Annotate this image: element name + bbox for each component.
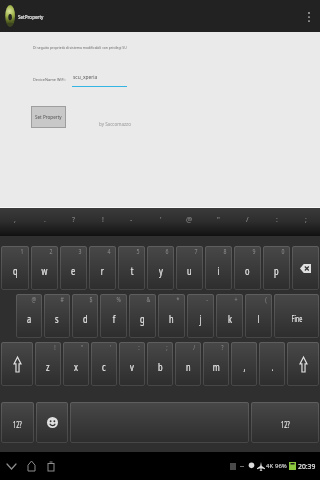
staticText: h bbox=[169, 311, 174, 326]
button[interactable]: ! bbox=[88, 208, 117, 232]
button[interactable]: Hide keyboard bbox=[4, 459, 18, 473]
button[interactable]: h bbox=[158, 294, 185, 338]
button[interactable]: x bbox=[63, 342, 89, 386]
staticText: scu_xperia bbox=[73, 74, 98, 81]
staticText: 6 bbox=[165, 247, 169, 256]
button[interactable] bbox=[1, 342, 33, 386]
button[interactable]: t bbox=[118, 246, 145, 290]
staticText: 0 bbox=[281, 247, 285, 256]
staticText: ( bbox=[265, 295, 267, 304]
staticText: 12? bbox=[13, 419, 22, 430]
button[interactable]: p bbox=[263, 246, 290, 290]
staticText: @ bbox=[32, 295, 36, 304]
staticText: ? bbox=[221, 343, 224, 352]
button[interactable] bbox=[36, 402, 68, 443]
staticText: v bbox=[130, 359, 134, 374]
staticText: 12? bbox=[281, 419, 290, 430]
staticText: r bbox=[101, 263, 104, 278]
button[interactable]: 12? bbox=[251, 402, 319, 443]
button[interactable]: a bbox=[16, 294, 42, 338]
button[interactable]: v bbox=[119, 342, 145, 386]
button[interactable]: n bbox=[175, 342, 201, 386]
button[interactable]: 12? bbox=[1, 402, 34, 443]
button[interactable]: o bbox=[234, 246, 261, 290]
staticText: " bbox=[81, 343, 84, 352]
staticText: + bbox=[234, 295, 238, 304]
button[interactable]: Home bbox=[24, 459, 38, 473]
button[interactable]: y bbox=[147, 246, 174, 290]
staticText: ' bbox=[160, 215, 162, 225]
button[interactable]: b bbox=[147, 342, 173, 386]
button[interactable]: @ bbox=[175, 208, 204, 232]
staticText: z bbox=[46, 359, 50, 374]
button[interactable]: q bbox=[1, 246, 29, 290]
staticText: , bbox=[14, 215, 16, 225]
button[interactable]: ; bbox=[291, 208, 320, 232]
button[interactable]: e bbox=[60, 246, 87, 290]
staticText: . bbox=[44, 215, 46, 225]
staticText: @ bbox=[186, 215, 193, 225]
staticText: g bbox=[140, 311, 145, 326]
staticText: x bbox=[74, 359, 78, 374]
staticText: d bbox=[83, 311, 88, 326]
staticText: 2 bbox=[49, 247, 53, 256]
button[interactable]: More options bbox=[301, 0, 317, 32]
staticText: & bbox=[146, 295, 150, 304]
button[interactable]: . bbox=[259, 342, 285, 386]
staticText: Di seguito proprietà di sistema modifica… bbox=[33, 45, 127, 50]
staticText: l bbox=[257, 311, 259, 326]
staticText: c bbox=[102, 359, 106, 374]
staticText: DeviceName WiFi: bbox=[33, 77, 66, 82]
button[interactable]: w bbox=[31, 246, 58, 290]
staticText: 7 bbox=[194, 247, 198, 256]
button[interactable]: k bbox=[216, 294, 243, 338]
button[interactable]: z bbox=[35, 342, 61, 386]
staticText: 1 bbox=[20, 247, 24, 256]
button[interactable]: , bbox=[0, 208, 30, 232]
staticText: 4 bbox=[107, 247, 111, 256]
button[interactable] bbox=[292, 246, 319, 290]
staticText: % bbox=[117, 295, 121, 304]
staticText: w bbox=[41, 263, 47, 278]
button[interactable]: s bbox=[44, 294, 70, 338]
button[interactable]: l bbox=[245, 294, 272, 338]
staticText: $ bbox=[89, 295, 93, 304]
button[interactable]: i bbox=[205, 246, 232, 290]
button[interactable]: ? bbox=[59, 208, 88, 232]
button[interactable]: m bbox=[203, 342, 229, 386]
button[interactable]: - bbox=[117, 208, 146, 232]
button[interactable]: c bbox=[91, 342, 117, 386]
staticText: / bbox=[246, 215, 249, 225]
button[interactable]: g bbox=[129, 294, 156, 338]
staticText: # bbox=[60, 295, 64, 304]
button[interactable]: j bbox=[187, 294, 214, 338]
button[interactable]: : bbox=[262, 208, 291, 232]
staticText: m bbox=[213, 359, 220, 374]
button[interactable]: u bbox=[176, 246, 203, 290]
button[interactable]: f bbox=[100, 294, 127, 338]
staticText: 9 bbox=[252, 247, 256, 256]
staticText: - bbox=[130, 215, 133, 225]
staticText: ! bbox=[102, 215, 104, 225]
staticText: : bbox=[276, 215, 278, 225]
button[interactable]: " bbox=[204, 208, 233, 232]
button[interactable]: . bbox=[30, 208, 59, 232]
staticText: j bbox=[199, 311, 201, 326]
staticText: , bbox=[243, 359, 245, 374]
staticText: : bbox=[138, 343, 140, 352]
button[interactable]: r bbox=[89, 246, 116, 290]
button[interactable] bbox=[70, 402, 249, 443]
staticText: SetProperty bbox=[18, 14, 44, 20]
staticText: Fine bbox=[292, 313, 302, 324]
button[interactable] bbox=[287, 342, 319, 386]
button[interactable]: ' bbox=[146, 208, 175, 232]
button[interactable]: Recents bbox=[44, 459, 58, 473]
staticText: 5 bbox=[136, 247, 140, 256]
button[interactable]: Set Property bbox=[31, 106, 66, 128]
button[interactable]: / bbox=[233, 208, 262, 232]
staticText: n bbox=[186, 359, 191, 374]
button[interactable]: , bbox=[231, 342, 257, 386]
button[interactable]: d bbox=[72, 294, 98, 338]
button[interactable]: Fine bbox=[274, 294, 319, 338]
staticText: s bbox=[55, 311, 59, 326]
